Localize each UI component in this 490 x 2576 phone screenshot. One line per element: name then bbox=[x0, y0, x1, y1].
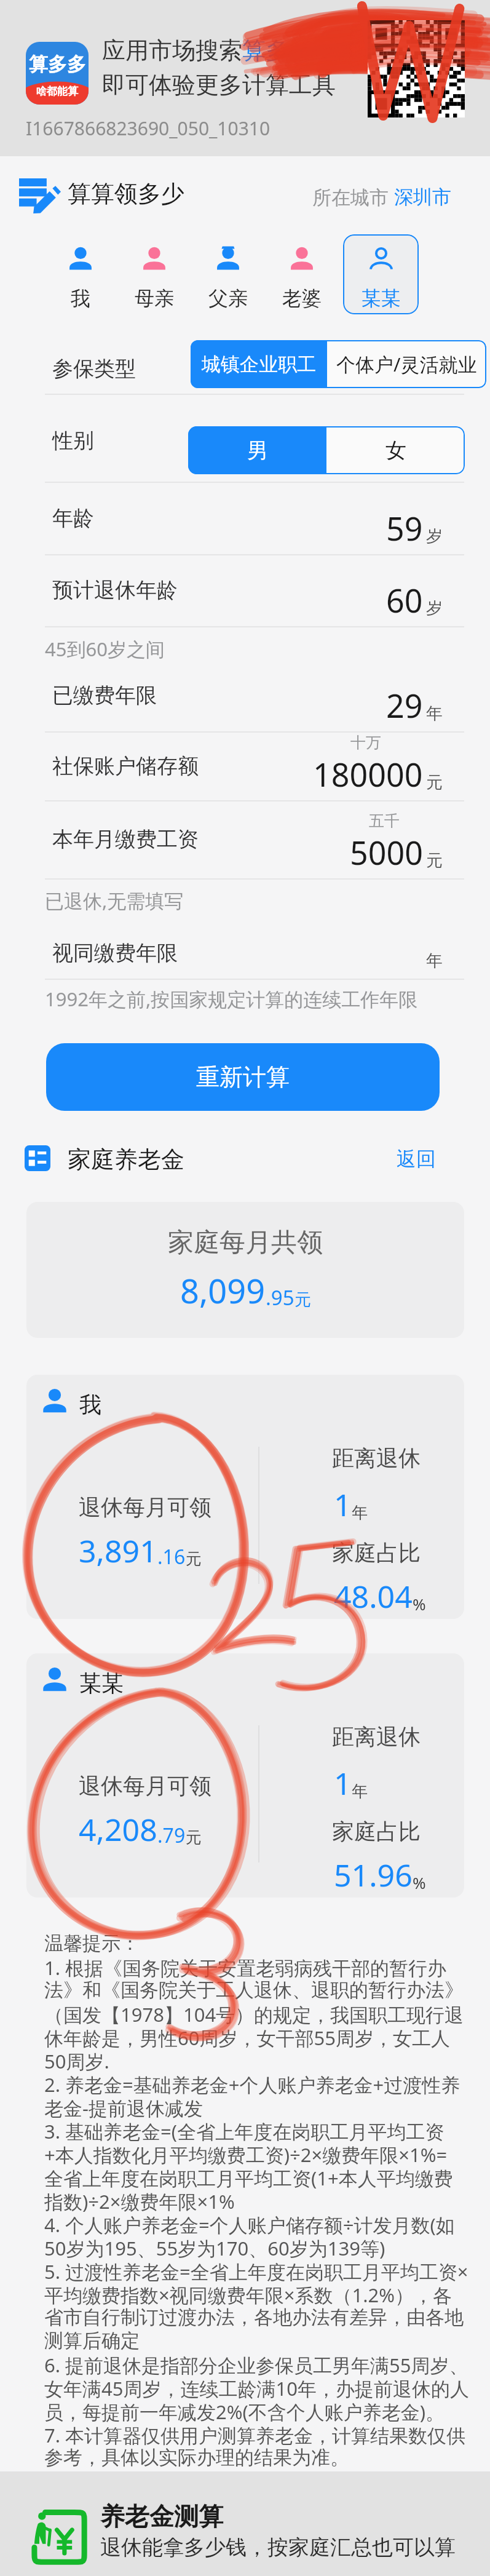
staticText: 4,208 bbox=[79, 1808, 157, 1850]
staticText: 啥都能算 bbox=[36, 85, 78, 98]
staticText: 1 bbox=[334, 1484, 352, 1525]
staticText: 个体户/灵活就业 bbox=[336, 351, 477, 377]
staticText: 男 bbox=[247, 437, 268, 464]
staticText: 五千 bbox=[369, 811, 400, 830]
staticText: 29 bbox=[386, 683, 423, 727]
staticText: 1 bbox=[334, 1762, 352, 1804]
staticText: 退休每月可领 bbox=[79, 1493, 211, 1521]
staticText: 已缴费年限 bbox=[52, 682, 157, 709]
staticText: 某某 bbox=[79, 1669, 124, 1697]
staticText: 5. 过渡性养老金=全省上年度在岗职工月平均工资× bbox=[44, 2259, 468, 2284]
staticText: 51.96 bbox=[334, 1854, 413, 1896]
staticText: 指数)÷2×缴费年限×1% bbox=[44, 2188, 235, 2214]
staticText: 元 bbox=[186, 1827, 202, 1848]
button[interactable]: 母亲 bbox=[116, 234, 192, 314]
staticText: 性别 bbox=[52, 427, 94, 454]
staticText: 距离退休 bbox=[332, 1723, 421, 1751]
staticText: 平均缴费指数×视同缴费年限×系数（1.2%），各 bbox=[44, 2282, 452, 2308]
button[interactable]: 返回 bbox=[397, 1147, 436, 1171]
staticText: 家庭占比 bbox=[332, 1818, 421, 1845]
staticText: 元 bbox=[186, 1549, 202, 1569]
button[interactable]: 女 bbox=[326, 426, 465, 474]
staticText: 45到60岁之间 bbox=[45, 636, 165, 662]
staticText: 年 bbox=[426, 950, 443, 971]
staticText: 3. 基础养老金=(全省上年度在岗职工月平均工资 bbox=[44, 2118, 445, 2144]
staticText: 本年月缴费工资 bbox=[52, 826, 199, 853]
staticText: 母亲 bbox=[135, 286, 174, 311]
staticText: % bbox=[413, 1872, 426, 1893]
staticText: 老金-提前退休减发 bbox=[44, 2095, 203, 2121]
staticText: 重新计算 bbox=[196, 1062, 290, 1092]
staticText: 年龄 bbox=[52, 505, 94, 531]
staticText: 2. 养老金=基础养老金+个人账户养老金+过渡性养 bbox=[44, 2072, 460, 2097]
staticText: 养老金测算 bbox=[100, 2501, 223, 2532]
staticText: 8,099 bbox=[180, 1268, 266, 1313]
staticText: 3,891 bbox=[79, 1530, 157, 1572]
staticText: 4. 个人账户养老金=个人账户储存额÷计发月数(如 bbox=[44, 2212, 455, 2238]
staticText: 年 bbox=[352, 1781, 368, 1802]
staticText: 180000 bbox=[313, 752, 423, 796]
staticText: 返回 bbox=[397, 1147, 436, 1171]
button[interactable]: 个体户/灵活就业 bbox=[327, 340, 486, 388]
button[interactable]: 某某 bbox=[26, 1653, 464, 1898]
staticText: 距离退休 bbox=[332, 1444, 421, 1472]
staticText: 老婆 bbox=[282, 286, 322, 311]
staticText: 退休能拿多少钱，按家庭汇总也可以算 bbox=[100, 2534, 456, 2561]
button[interactable]: 父亲 bbox=[190, 234, 266, 314]
staticText: 我 bbox=[79, 1391, 101, 1418]
staticText: 城镇企业职工 bbox=[202, 352, 316, 376]
staticText: 50岁为195、55岁为170、60岁为139等) bbox=[44, 2235, 385, 2261]
button[interactable]: 老婆 bbox=[264, 234, 339, 314]
staticText: 家庭占比 bbox=[332, 1539, 421, 1567]
staticText: 所在城市 bbox=[312, 184, 394, 210]
staticText: 退休每月可领 bbox=[79, 1772, 211, 1800]
staticText: 温馨提示： bbox=[44, 1931, 140, 1955]
staticText: 1. 根据《国务院关于安置老弱病残干部的暂行办 bbox=[44, 1955, 447, 1981]
staticText: 父亲 bbox=[208, 286, 248, 311]
staticText: 算算领多少 bbox=[68, 179, 184, 209]
staticText: 家庭养老金 bbox=[68, 1145, 184, 1174]
staticText: 参考，具体以实际办理的结果为准。 bbox=[44, 2446, 349, 2470]
staticText: 预计退休年龄 bbox=[52, 577, 178, 603]
staticText: 元 bbox=[294, 1289, 311, 1310]
staticText: 休年龄是，男性60周岁，女干部55周岁，女工人 bbox=[44, 2025, 450, 2051]
staticText: 女年满45周岁，连续工龄满10年，办提前退休的人 bbox=[44, 2375, 469, 2401]
staticText: 某某 bbox=[362, 286, 401, 311]
staticText: I1667866823690_050_10310 bbox=[26, 116, 271, 141]
staticText: % bbox=[413, 1593, 426, 1615]
staticText: 算多多 bbox=[29, 52, 86, 76]
staticText: 家庭每月共领 bbox=[168, 1226, 323, 1259]
staticText: 应用市场搜索 bbox=[102, 36, 242, 65]
staticText: 算多多 bbox=[242, 36, 312, 65]
other: 养老金测算 bbox=[28, 2506, 86, 2565]
staticText: +本人指数化月平均缴费工资)÷2×缴费年限×1%= bbox=[44, 2142, 448, 2168]
button[interactable]: 我 bbox=[26, 1375, 464, 1619]
staticText: 年 bbox=[426, 703, 443, 724]
staticText: （国发【1978】104号）的规定，我国职工现行退 bbox=[44, 2002, 464, 2027]
button[interactable]: 某某 bbox=[343, 234, 419, 314]
staticText: 测算后确定 bbox=[44, 2329, 140, 2353]
staticText: 省市自行制订过渡办法，各地办法有差异，由各地 bbox=[44, 2305, 464, 2329]
button[interactable]: 城镇企业职工 bbox=[191, 340, 327, 388]
staticText: 5000 bbox=[350, 830, 423, 874]
staticText: 全省上年度在岗职工月平均工资(1+本人平均缴费 bbox=[44, 2165, 453, 2191]
staticText: 7. 本计算器仅供用户测算养老金，计算结果数仅供 bbox=[44, 2422, 466, 2448]
staticText: 视同缴费年限 bbox=[52, 940, 178, 966]
staticText: 已退休,无需填写 bbox=[45, 888, 184, 913]
staticText: .95 bbox=[266, 1284, 294, 1311]
staticText: 年 bbox=[352, 1503, 368, 1523]
staticText: 参保类型 bbox=[52, 356, 136, 382]
staticText: 岁 bbox=[426, 526, 443, 547]
staticText: 59 bbox=[386, 506, 423, 550]
button[interactable]: 重新计算 bbox=[46, 1043, 440, 1111]
staticText: 即可体验更多计算工具 bbox=[102, 70, 336, 100]
button[interactable]: 我 bbox=[42, 234, 118, 314]
staticText: 6. 提前退休是指部分企业参保员工男年满55周岁、 bbox=[44, 2352, 468, 2378]
staticText: 岁 bbox=[426, 598, 443, 619]
staticText: 60 bbox=[386, 578, 423, 622]
staticText: 女 bbox=[385, 437, 406, 464]
button[interactable]: 男 bbox=[188, 426, 326, 474]
staticText: 员，每提前一年减发2%(不含个人账户养老金)。 bbox=[44, 2399, 445, 2425]
staticText: 48.04 bbox=[334, 1575, 413, 1617]
staticText: 1992年之前,按国家规定计算的连续工作年限 bbox=[45, 986, 418, 1012]
